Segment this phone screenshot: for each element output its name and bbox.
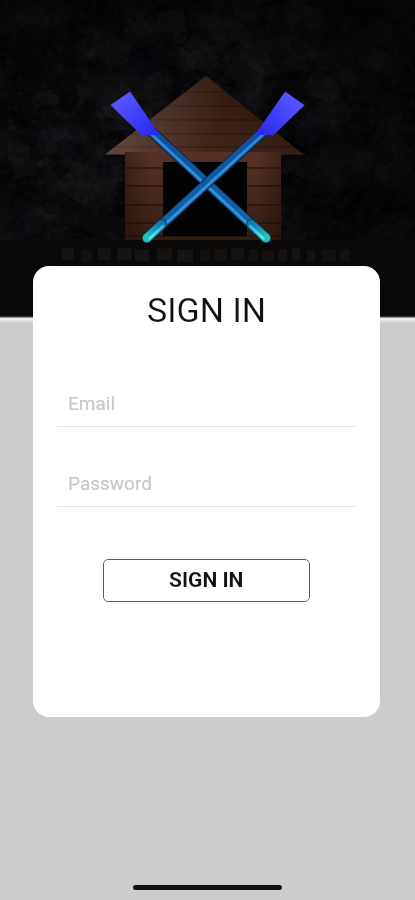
staticText: Email xyxy=(68,392,116,414)
button[interactable]: SIGN IN xyxy=(103,559,310,602)
staticText: SIGN IN xyxy=(169,568,244,593)
staticText: SIGN IN xyxy=(33,290,380,330)
staticText: Password xyxy=(68,472,152,494)
